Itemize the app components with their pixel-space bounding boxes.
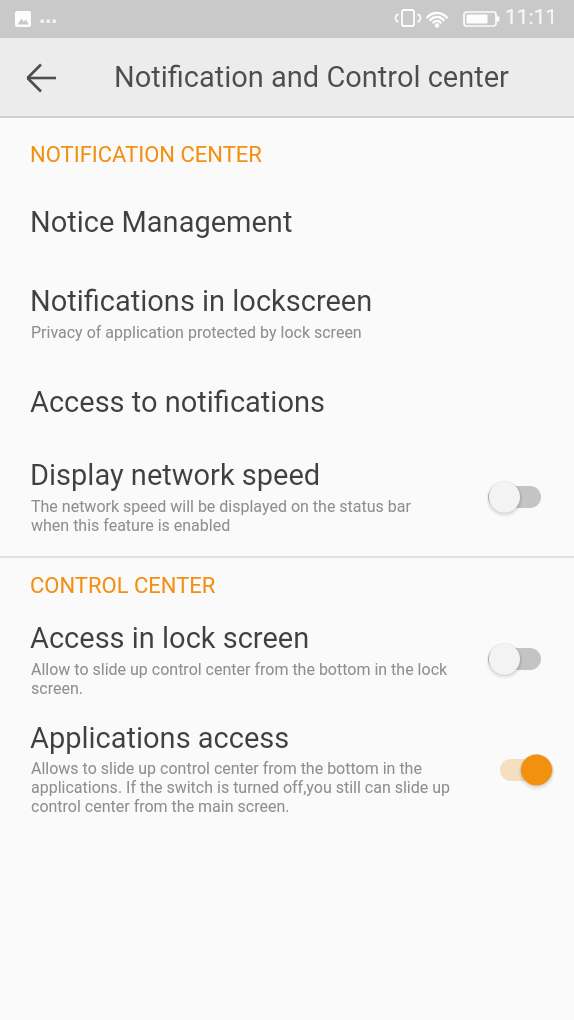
button[interactable]: Access to notifications [0, 358, 574, 438]
staticText: 11:11 [505, 5, 558, 30]
staticText: Display network speed [30, 458, 321, 492]
button[interactable]: Notifications in lockscreen [0, 260, 574, 352]
staticText: Applications access [30, 721, 290, 755]
button[interactable] [0, 38, 70, 118]
staticText: Privacy of application protected by lock… [31, 323, 362, 342]
staticText: Notice Management [30, 205, 293, 239]
staticText: Access in lock screen [30, 621, 310, 655]
staticText: NOTIFICATION CENTER [30, 142, 262, 168]
staticText: Notifications in lockscreen [30, 284, 373, 318]
staticText: Allows to slide up control center from t… [31, 759, 451, 816]
staticText: CONTROL CENTER [30, 573, 216, 599]
button[interactable]: Applications access [0, 706, 574, 828]
button[interactable]: Notice Management [0, 178, 574, 260]
staticText: Access to notifications [30, 385, 325, 419]
staticText: The network speed will be displayed on t… [31, 497, 411, 535]
staticText: Allow to slide up control center from th… [31, 660, 448, 698]
button[interactable]: Access in lock screen [0, 606, 574, 706]
staticText: Notification and Control center [114, 60, 509, 94]
button[interactable]: Display network speed [0, 438, 574, 548]
